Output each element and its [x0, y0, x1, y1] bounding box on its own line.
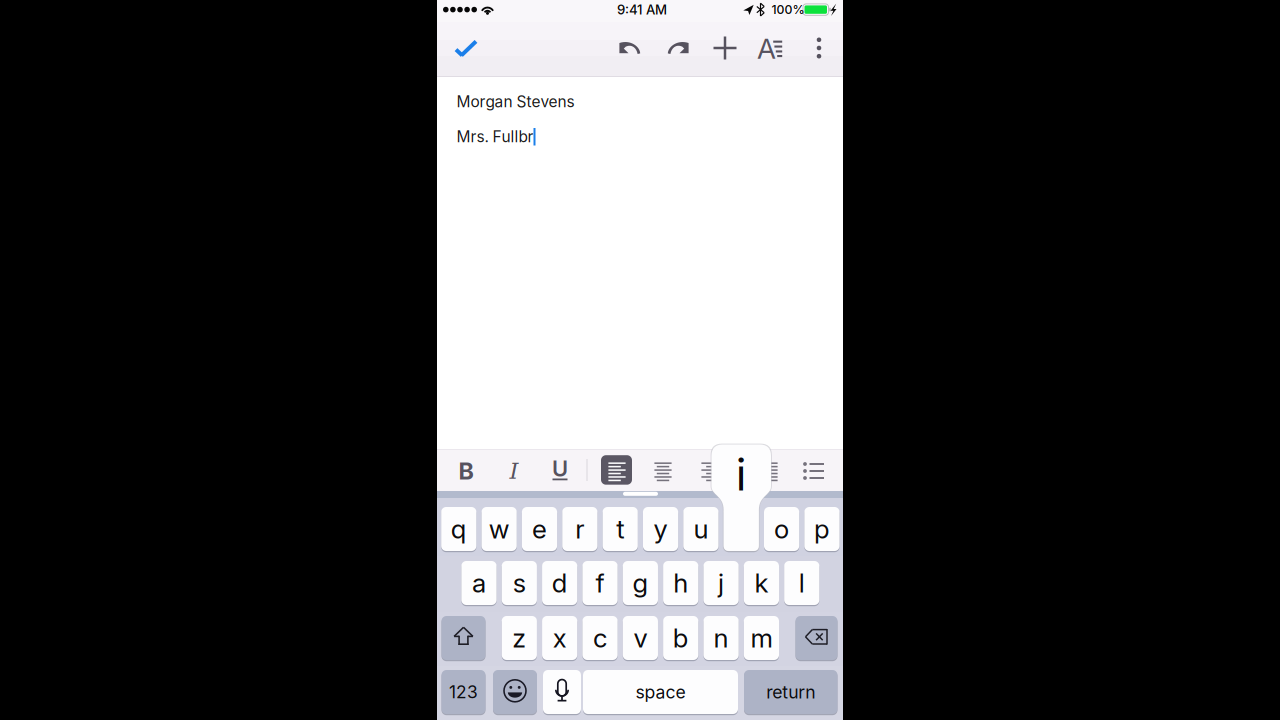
button[interactable]: e	[522, 506, 557, 552]
staticText: m	[750, 622, 772, 654]
button[interactable]: b	[663, 615, 698, 661]
button[interactable]: w	[482, 506, 517, 552]
staticText: t	[616, 513, 624, 545]
button[interactable]: g	[623, 560, 658, 606]
staticText: 123	[449, 681, 478, 702]
button[interactable]: a	[461, 560, 497, 606]
staticText: u	[693, 513, 708, 545]
staticText: b	[673, 622, 689, 654]
staticText: return	[766, 681, 815, 703]
staticText: z	[512, 622, 526, 654]
staticText: j	[718, 567, 724, 599]
button[interactable]: z	[502, 615, 537, 661]
staticText: a	[472, 567, 486, 599]
button[interactable]: q	[441, 506, 476, 552]
staticText: r	[575, 513, 584, 545]
button[interactable]: j	[703, 560, 739, 606]
staticText: B	[458, 457, 473, 485]
staticText: g	[632, 567, 648, 599]
button[interactable]: k	[744, 560, 779, 606]
button[interactable]: l	[784, 560, 819, 606]
staticText: q	[451, 513, 467, 545]
staticText: s	[513, 567, 526, 599]
staticText: n	[714, 622, 729, 654]
button[interactable]: Undo	[608, 26, 652, 70]
staticText: p	[814, 513, 830, 545]
staticText: x	[553, 622, 567, 654]
button[interactable]: Bulleted list	[792, 449, 836, 491]
button[interactable]: Underline	[538, 449, 582, 491]
button[interactable]: s	[502, 560, 537, 606]
button[interactable]: h	[663, 560, 698, 606]
staticText: l	[799, 567, 805, 599]
staticText: k	[754, 567, 768, 599]
button[interactable]: Emoji	[493, 669, 537, 715]
button[interactable]: Italic	[492, 449, 536, 491]
button[interactable]: Align left	[595, 449, 639, 491]
button[interactable]: f	[582, 560, 618, 606]
staticText: 100%	[771, 2, 804, 17]
staticText: w	[489, 513, 510, 545]
button[interactable]: space	[583, 669, 738, 715]
staticText: c	[593, 622, 607, 654]
staticText: h	[673, 567, 688, 599]
button[interactable]: y	[643, 506, 678, 552]
button[interactable]: p	[804, 506, 840, 552]
staticText: d	[552, 567, 568, 599]
staticText: o	[774, 513, 789, 545]
button[interactable]: n	[703, 615, 739, 661]
staticText: I	[509, 458, 518, 484]
button[interactable]: Shift	[441, 615, 485, 661]
staticText: A	[757, 32, 776, 65]
button[interactable]: o	[764, 506, 799, 552]
staticText: U	[552, 455, 568, 482]
staticText: 9:41 AM	[617, 2, 667, 18]
staticText: y	[654, 513, 668, 545]
button[interactable]: Done	[441, 26, 491, 70]
staticText: v	[633, 622, 647, 654]
staticText: space	[635, 681, 685, 703]
button[interactable]: Delete	[795, 615, 837, 661]
button[interactable]: Bold	[444, 449, 488, 491]
button[interactable]: x	[542, 615, 577, 661]
staticText: Mrs. Fullbr	[456, 127, 533, 146]
button[interactable]: Justify	[747, 449, 791, 491]
button[interactable]: d	[542, 560, 577, 606]
button[interactable]: v	[623, 615, 658, 661]
button[interactable]: Text formatting	[751, 26, 795, 70]
staticText: Morgan Stevens	[456, 92, 574, 111]
button[interactable]: Align centre	[641, 449, 685, 491]
button[interactable]: m	[744, 615, 779, 661]
button[interactable]: More options	[797, 26, 841, 70]
button[interactable]: Insert	[703, 26, 747, 70]
button[interactable]: return	[744, 669, 837, 715]
staticText: f	[595, 567, 604, 599]
button[interactable]: Align right	[688, 449, 732, 491]
button[interactable]: r	[562, 506, 597, 552]
button[interactable]: u	[683, 506, 718, 552]
button[interactable]: Dictation	[543, 669, 581, 715]
button[interactable]: c	[582, 615, 618, 661]
button[interactable]: Redo	[656, 26, 700, 70]
button[interactable]: i	[724, 506, 759, 552]
button[interactable]: t	[603, 506, 638, 552]
staticText: e	[532, 513, 547, 545]
button[interactable]: Numbers and symbols	[441, 669, 485, 715]
staticText: i	[736, 448, 747, 501]
